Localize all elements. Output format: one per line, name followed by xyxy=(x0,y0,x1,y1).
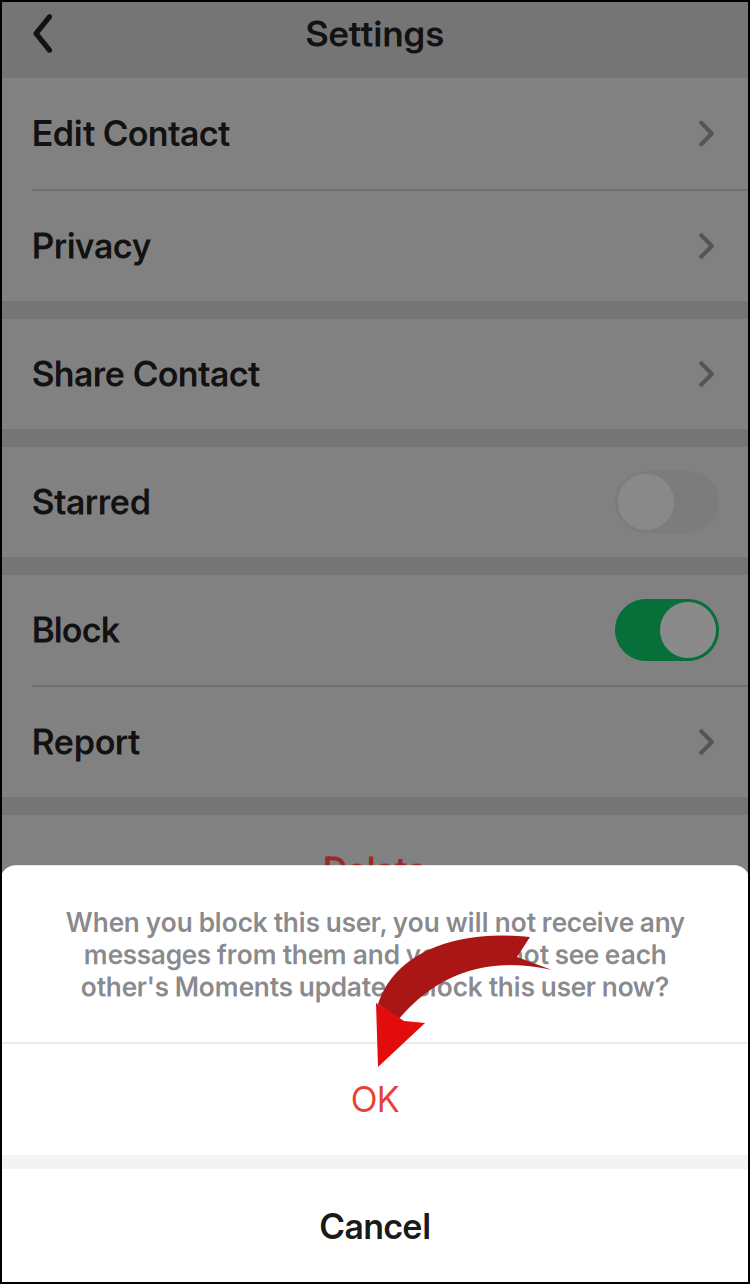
staticText: Edit Contact xyxy=(32,112,230,154)
button[interactable]: Back xyxy=(0,2,80,65)
button[interactable]: Edit Contact xyxy=(0,78,750,189)
staticText: Cancel xyxy=(319,1205,430,1247)
button[interactable]: Report xyxy=(0,687,750,797)
staticText: Starred xyxy=(32,481,151,523)
button[interactable]: Cancel xyxy=(0,1169,750,1284)
staticText: Report xyxy=(32,721,140,763)
button[interactable]: Share Contact xyxy=(0,319,750,429)
staticText: Settings xyxy=(305,12,444,55)
staticText: Delete xyxy=(323,849,427,891)
staticText: OK xyxy=(351,1078,399,1120)
staticText: Share Contact xyxy=(32,353,260,395)
button[interactable]: Block xyxy=(615,599,718,661)
staticText: Block xyxy=(32,609,120,651)
staticText: Privacy xyxy=(32,225,151,267)
button[interactable]: Privacy xyxy=(0,191,750,301)
button[interactable]: Starred xyxy=(615,471,718,533)
staticText: When you block this user, you will not r… xyxy=(65,906,684,1003)
button[interactable]: OK xyxy=(0,1044,750,1155)
